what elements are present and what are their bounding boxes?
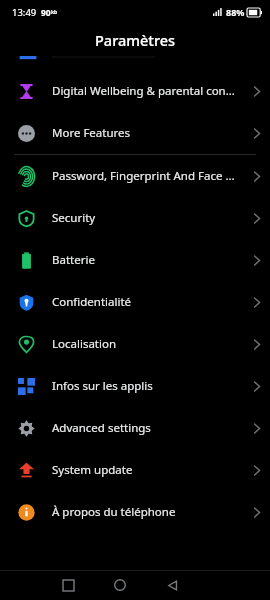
staticText: Infos sur les applis [52,378,238,394]
staticText: 88% [226,6,245,18]
button[interactable]: Infos sur les applis [0,365,270,407]
button[interactable]: Recent apps [42,570,94,600]
staticText: À propos du téléphone [52,504,238,520]
staticText: System update [52,462,238,478]
staticText: Confidentialité [52,294,238,310]
staticText: More Features [52,125,238,141]
staticText: Security [52,210,238,226]
staticText: Localisation [52,336,238,352]
staticText: Digital Wellbeing & parental controls [52,83,238,99]
button[interactable]: System update [0,449,270,491]
button[interactable]: Back [146,570,198,600]
staticText: Batterie [52,252,238,268]
button[interactable]: À propos du téléphone [0,491,270,533]
staticText: Password, Fingerprint And Face De… [52,168,238,184]
button[interactable]: Password, Fingerprint And Face De… [0,155,270,197]
staticText: Paramètres [95,30,176,50]
button[interactable]: Digital Wellbeing & parental controls [0,70,270,112]
staticText: 13:49 [12,6,37,19]
button[interactable]: Security [0,197,270,239]
staticText: 90 [41,7,51,19]
button[interactable]: Batterie [0,239,270,281]
button[interactable]: Home [94,570,146,600]
button[interactable]: Advanced settings [0,407,270,449]
button[interactable]: Confidentialité [0,281,270,323]
staticText: Advanced settings [52,420,238,436]
button[interactable]: More Features [0,112,270,154]
button[interactable]: Localisation [0,323,270,365]
staticText: kb [51,9,58,16]
